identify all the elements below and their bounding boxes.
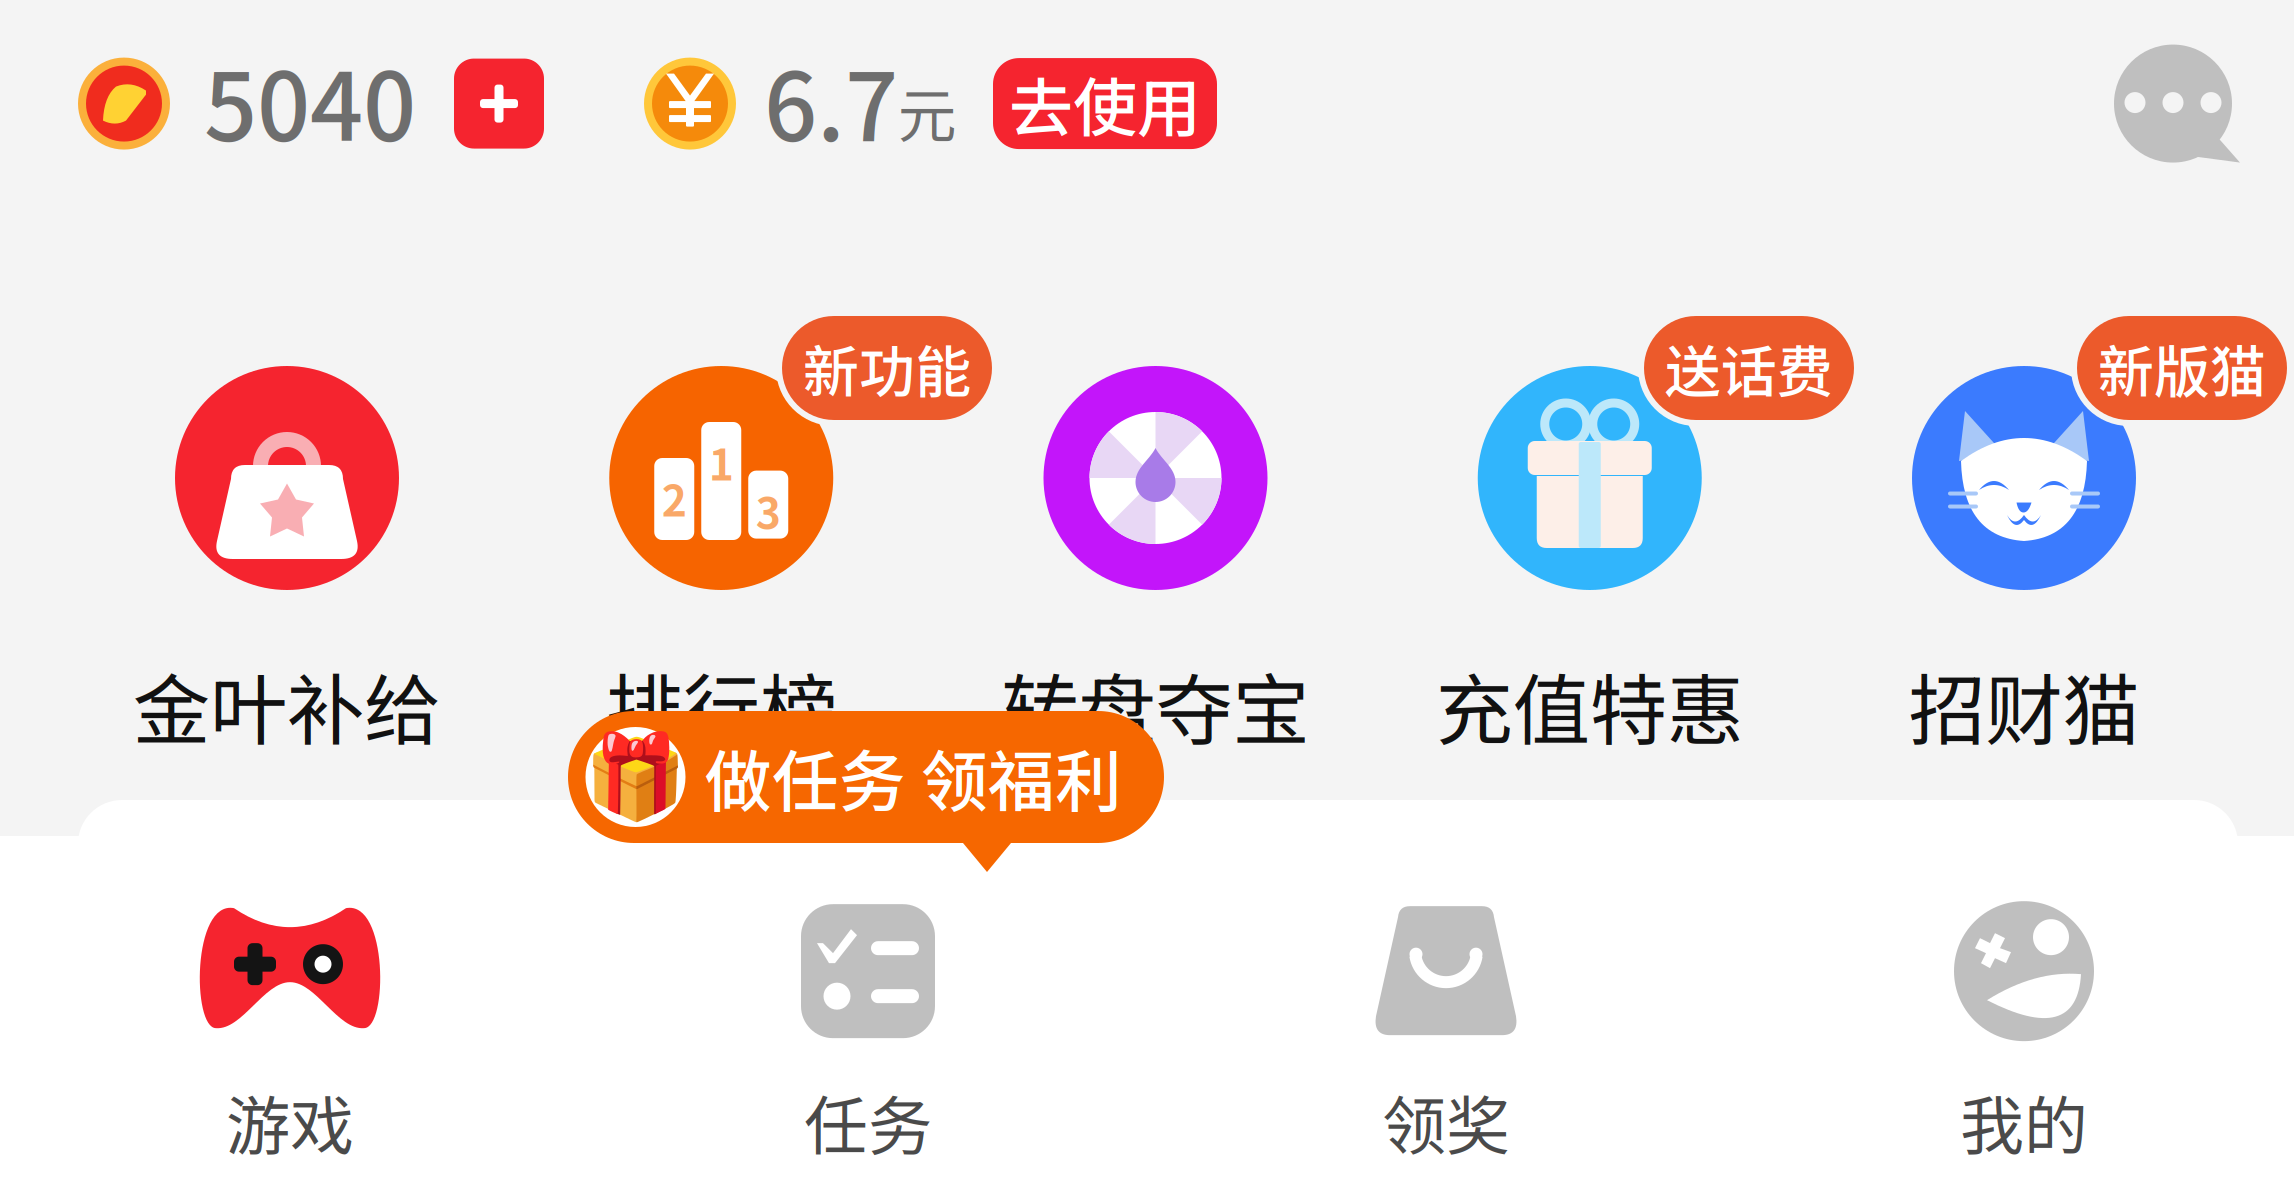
staticText: 新版猫 [2098, 327, 2266, 409]
staticText: 排行榜 [606, 649, 837, 761]
staticText: 5040 [204, 33, 416, 168]
button[interactable]: 2 [609, 366, 833, 761]
staticText: 3 [756, 480, 781, 541]
button[interactable]: 转盘夺宝 [1043, 366, 1267, 761]
button[interactable]: 领奖 [1336, 909, 1556, 1168]
button[interactable]: 游戏 [180, 909, 400, 1168]
button[interactable]: 任务 [758, 909, 978, 1168]
button[interactable]: 新版猫 [2071, 310, 2293, 426]
button[interactable]: 送话费 [1638, 310, 1860, 426]
button[interactable]: 招财猫 [1912, 366, 2136, 761]
staticText: 🎁 [584, 729, 687, 825]
button[interactable]: Customer service [2110, 45, 2240, 163]
button[interactable]: 金叶补给 [175, 366, 399, 761]
button[interactable]: 🎁 [568, 711, 1164, 872]
staticText: 元 [898, 69, 957, 154]
staticText: 金叶补给 [133, 649, 441, 761]
staticText: 我的 [1960, 1075, 2088, 1168]
button[interactable]: 我的 [1914, 909, 2134, 1168]
staticText: 任务 [804, 1075, 932, 1168]
staticText: 6.7 [764, 33, 898, 168]
staticText: 充值特惠 [1436, 649, 1744, 761]
staticText: 去使用 [1009, 57, 1201, 150]
button[interactable]: 去使用 [993, 58, 1217, 149]
staticText: 做任务 领福利 [705, 729, 1122, 825]
staticText: 1 [709, 431, 734, 493]
staticText: 转盘夺宝 [1001, 649, 1309, 761]
button[interactable]: 充值特惠 [1478, 366, 1702, 761]
staticText: 2 [662, 467, 687, 529]
staticText: 送话费 [1665, 327, 1833, 409]
staticText: 新功能 [803, 327, 971, 409]
button[interactable]: 新功能 [776, 310, 998, 426]
staticText: 游戏 [226, 1075, 354, 1168]
staticText: 招财猫 [1908, 649, 2139, 761]
button[interactable]: Add coins [454, 59, 544, 149]
staticText: 领奖 [1382, 1075, 1510, 1168]
